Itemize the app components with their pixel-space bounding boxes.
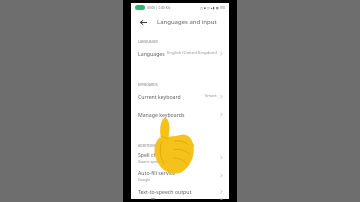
button[interactable]: Languages — [131, 44, 229, 62]
staticText: ◫ ▪ ◳ ▴ ▮ ▦ 100 — [200, 6, 225, 10]
button[interactable]: Back — [137, 16, 149, 28]
staticText: Manage keyboards — [138, 111, 185, 118]
staticText: English (United Kingdom) — [167, 50, 217, 56]
button[interactable]: Auto-fill service — [131, 166, 229, 184]
staticText: Text-to-speech output — [138, 188, 192, 195]
staticText: Smart — [205, 93, 217, 99]
button[interactable]: Text-to-speech output — [131, 184, 229, 199]
staticText: Languages — [138, 50, 165, 57]
button[interactable]: Current keyboard — [131, 87, 229, 105]
staticText: Xiaomi spell checker — [138, 159, 173, 164]
staticText: Spell checker — [138, 151, 170, 158]
staticText: KEYBOARDS — [138, 82, 158, 87]
staticText: Languages and input — [157, 18, 217, 26]
staticText: Google — [138, 177, 151, 182]
staticText: Current keyboard — [138, 93, 181, 100]
button[interactable]: Spell checker — [131, 148, 229, 166]
staticText: ADDITIONAL SETTINGS AND MORE — [138, 143, 195, 148]
staticText: 00:05 | 0.00 K/s — [147, 6, 171, 10]
staticText: LANGUAGES — [138, 39, 158, 44]
staticText: Auto-fill service — [138, 169, 176, 176]
button[interactable]: Manage keyboards — [131, 105, 229, 123]
